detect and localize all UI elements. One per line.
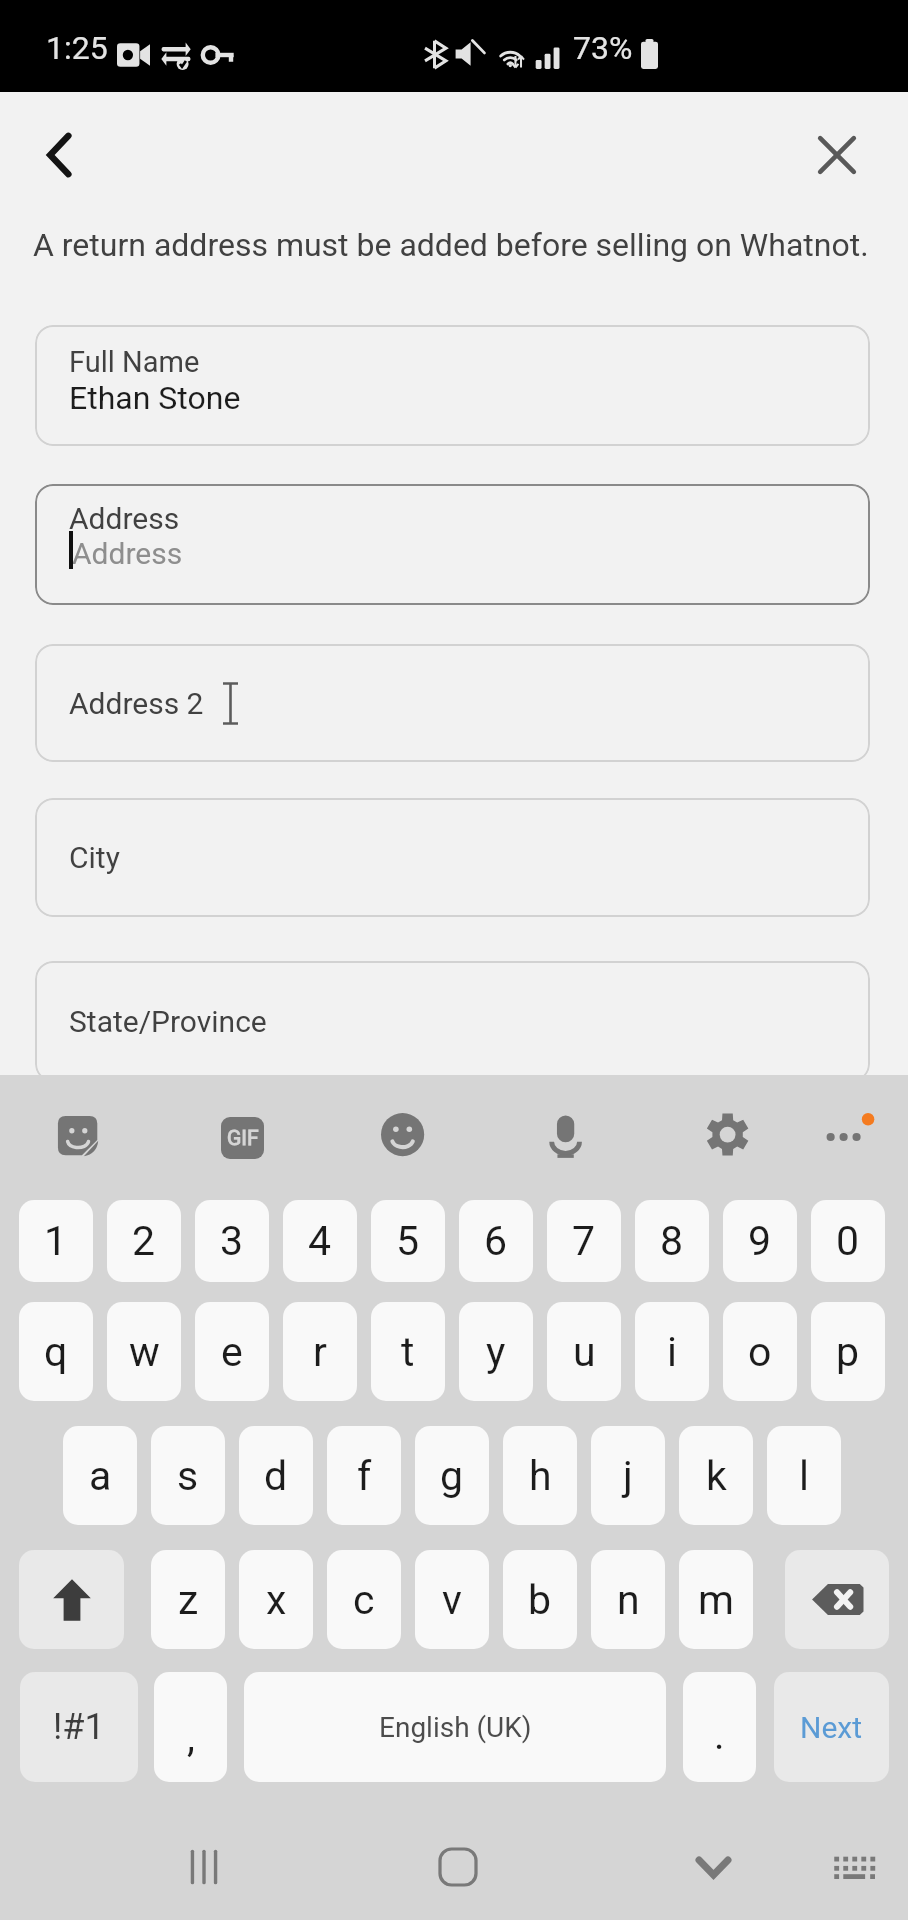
button[interactable]: Recent apps (169, 1832, 239, 1902)
button[interactable]: m (679, 1550, 753, 1649)
button[interactable]: t (371, 1302, 445, 1401)
button[interactable]: 5 (371, 1200, 445, 1282)
staticText: h (529, 1452, 552, 1500)
button[interactable]: Address (35, 484, 870, 605)
staticText: Next (800, 1710, 863, 1745)
staticText: State/Province (69, 1004, 267, 1039)
staticText: GIF (227, 1126, 259, 1151)
button[interactable]: v (415, 1550, 489, 1649)
button[interactable]: l (767, 1426, 841, 1525)
button[interactable]: Home (423, 1832, 493, 1902)
button[interactable]: d (239, 1426, 313, 1525)
button[interactable]: Stickers (47, 1104, 113, 1170)
button[interactable]: o (723, 1302, 797, 1401)
staticText: p (836, 1328, 860, 1376)
button[interactable]: Backspace (785, 1550, 889, 1649)
staticText: Address (72, 536, 183, 571)
button[interactable]: y (459, 1302, 533, 1401)
staticText: Full Name (69, 345, 200, 379)
button[interactable]: 7 (547, 1200, 621, 1282)
staticText: x (266, 1576, 287, 1624)
staticText: Ethan Stone (69, 379, 241, 417)
staticText: 2 (132, 1217, 156, 1265)
staticText: g (440, 1452, 464, 1500)
staticText: k (706, 1452, 727, 1500)
button[interactable]: Shift (19, 1550, 124, 1649)
staticText: e (221, 1328, 243, 1376)
button[interactable]: City (35, 798, 870, 917)
button[interactable]: k (679, 1426, 753, 1525)
staticText: A return address must be added before se… (33, 226, 869, 264)
button[interactable]: q (19, 1302, 93, 1401)
button[interactable]: u (547, 1302, 621, 1401)
staticText: 5 (396, 1217, 420, 1265)
staticText: s (177, 1452, 199, 1500)
staticText: 6 (484, 1217, 508, 1265)
staticText: i (667, 1328, 677, 1376)
button[interactable]: 8 (635, 1200, 709, 1282)
staticText: j (623, 1452, 633, 1500)
button[interactable]: . (683, 1672, 756, 1782)
staticText: 73% (573, 29, 633, 67)
button[interactable]: More options (813, 1104, 879, 1170)
button[interactable]: 3 (195, 1200, 269, 1282)
staticText: n (617, 1576, 640, 1624)
button[interactable]: 0 (811, 1200, 885, 1282)
staticText: t (401, 1328, 415, 1376)
button[interactable]: Change keyboard (819, 1832, 889, 1902)
button[interactable]: h (503, 1426, 577, 1525)
button[interactable]: 6 (459, 1200, 533, 1282)
button[interactable]: Close (808, 126, 866, 184)
button[interactable]: s (151, 1426, 225, 1525)
button[interactable]: Emoji (372, 1104, 438, 1170)
button[interactable]: a (63, 1426, 137, 1525)
staticText: v (442, 1576, 462, 1624)
staticText: r (313, 1328, 327, 1376)
staticText: l (799, 1452, 809, 1500)
staticText: City (69, 840, 120, 875)
button[interactable]: f (327, 1426, 401, 1525)
button[interactable]: 2 (107, 1200, 181, 1282)
button[interactable]: g (415, 1426, 489, 1525)
button[interactable]: !#1 (20, 1672, 138, 1782)
button[interactable]: Settings (697, 1104, 763, 1170)
button[interactable]: GIF (209, 1105, 275, 1171)
button[interactable]: Full Name (35, 325, 870, 446)
button[interactable]: b (503, 1550, 577, 1649)
button[interactable]: c (327, 1550, 401, 1649)
button[interactable]: w (107, 1302, 181, 1401)
button[interactable]: p (811, 1302, 885, 1401)
button[interactable]: 9 (723, 1200, 797, 1282)
button[interactable]: 4 (283, 1200, 357, 1282)
staticText: English (UK) (379, 1711, 532, 1744)
button[interactable]: 1 (19, 1200, 93, 1282)
staticText: m (698, 1576, 734, 1624)
button[interactable]: j (591, 1426, 665, 1525)
button[interactable]: x (239, 1550, 313, 1649)
button[interactable]: Voice input (535, 1104, 601, 1170)
staticText: f (357, 1452, 372, 1500)
staticText: 3 (220, 1217, 244, 1265)
button[interactable]: e (195, 1302, 269, 1401)
button[interactable]: n (591, 1550, 665, 1649)
staticText: 8 (660, 1217, 684, 1265)
button[interactable]: State/Province (35, 961, 870, 1082)
button[interactable]: Address 2 (35, 644, 870, 762)
staticText: !#1 (53, 1706, 105, 1748)
staticText: 9 (748, 1217, 772, 1265)
button[interactable]: English (UK) (244, 1672, 666, 1782)
button[interactable]: i (635, 1302, 709, 1401)
button[interactable]: Next (774, 1672, 889, 1782)
staticText: 4 (308, 1217, 332, 1265)
staticText: 7 (572, 1217, 596, 1265)
button[interactable]: , (154, 1672, 227, 1782)
button[interactable]: z (151, 1550, 225, 1649)
staticText: q (44, 1328, 68, 1376)
staticText: Address (69, 501, 180, 536)
staticText: c (353, 1576, 375, 1624)
button[interactable]: r (283, 1302, 357, 1401)
button[interactable]: Back (30, 123, 94, 187)
staticText: w (129, 1328, 160, 1376)
staticText: 1 (44, 1217, 68, 1265)
button[interactable]: Hide keyboard (678, 1832, 748, 1902)
